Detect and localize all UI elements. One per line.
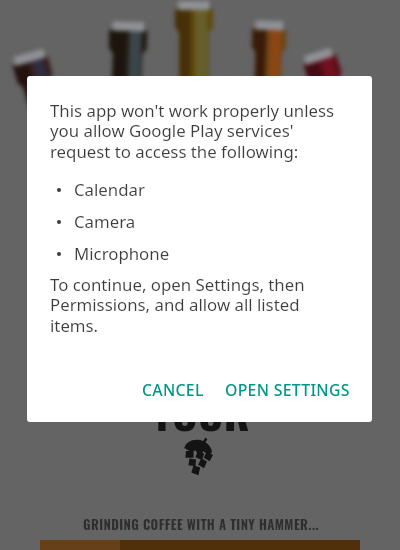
staticText: GRINDING COFFEE WITH A TINY HAMMER... [83, 514, 320, 533]
staticText: YOUR [151, 379, 250, 444]
staticText: CANCEL [142, 379, 204, 401]
staticText: To continue, open Settings, then Permiss… [50, 273, 337, 337]
staticText: Camera [74, 210, 136, 233]
staticText: Microphone [74, 242, 170, 265]
staticText: Calendar [74, 178, 145, 201]
staticText: OPEN SETTINGS [225, 379, 350, 401]
button[interactable]: OPEN SETTINGS [217, 370, 358, 410]
button[interactable]: CANCEL [134, 370, 212, 410]
staticText: This app won't work properly unless you … [50, 99, 337, 163]
